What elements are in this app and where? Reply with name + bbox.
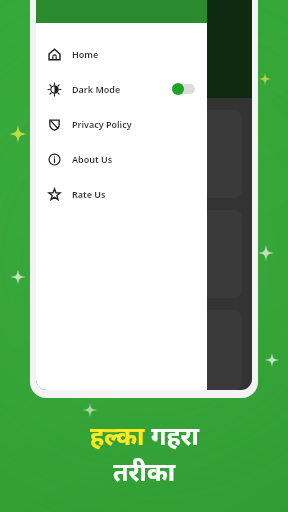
staticText: Rate Us: [72, 188, 106, 200]
button[interactable]: Dark Mode: [36, 71, 207, 106]
staticText: हल्का: [90, 418, 151, 452]
staticText: गहरा: [151, 418, 199, 452]
staticText: Home: [72, 48, 99, 60]
button[interactable]: Home: [36, 36, 207, 71]
button[interactable]: About Us: [36, 141, 207, 176]
staticText: Privacy Policy: [72, 118, 132, 130]
button[interactable]: Privacy Policy: [36, 106, 207, 141]
staticText: तरीका: [113, 454, 175, 488]
staticText: Dark Mode: [72, 83, 121, 95]
button[interactable]: Toggle dark mode: [172, 83, 195, 95]
staticText: About Us: [72, 153, 113, 165]
button[interactable]: Rate Us: [36, 176, 207, 211]
